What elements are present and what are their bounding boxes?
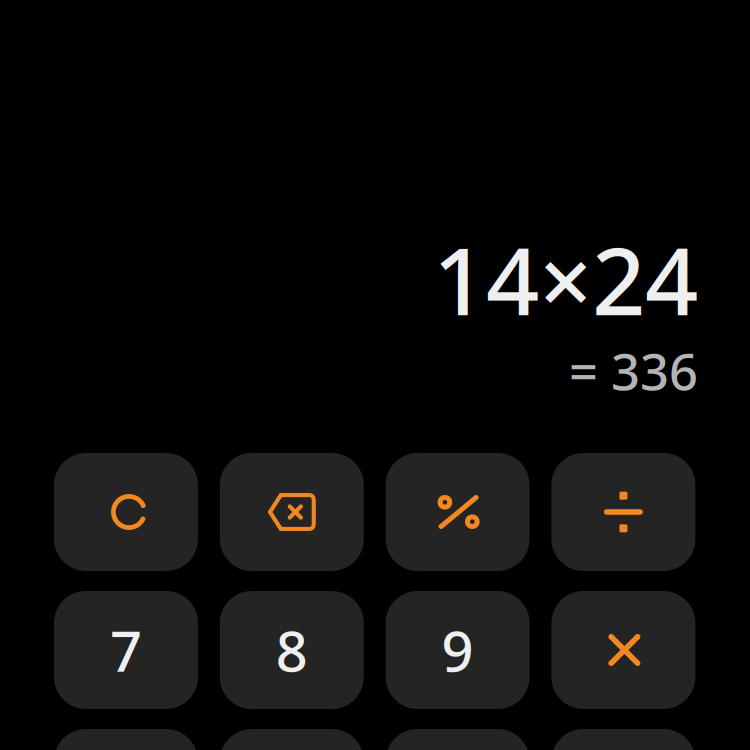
staticText: 14×24: [433, 217, 698, 341]
button[interactable]: 5: [220, 729, 364, 750]
staticText: = 336: [569, 337, 698, 404]
button[interactable]: Percent: [386, 453, 530, 571]
button[interactable]: Multiply: [551, 591, 695, 709]
button[interactable]: Delete: [220, 453, 364, 571]
staticText: 7: [110, 613, 142, 687]
button[interactable]: 7: [54, 591, 198, 709]
button[interactable]: Clear: [54, 453, 198, 571]
staticText: 9: [442, 613, 474, 687]
button[interactable]: Divide: [551, 453, 695, 571]
button[interactable]: 6: [386, 729, 530, 750]
button[interactable]: Minus: [551, 729, 695, 750]
button[interactable]: 8: [220, 591, 364, 709]
button[interactable]: 4: [54, 729, 198, 750]
button[interactable]: 9: [386, 591, 530, 709]
staticText: 8: [276, 613, 308, 687]
